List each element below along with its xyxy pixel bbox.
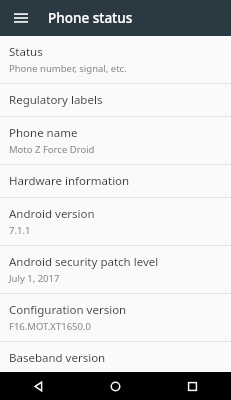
staticText: Status xyxy=(9,44,43,60)
button[interactable]: Recent apps xyxy=(154,372,231,400)
staticText: Configuration version xyxy=(9,302,127,318)
staticText: Regulatory labels xyxy=(9,92,103,108)
staticText: Android version xyxy=(9,206,95,222)
staticText: Moto Z Force Droid xyxy=(9,143,95,156)
button[interactable]: Configuration version xyxy=(0,294,231,341)
staticText: F16.MOT.XT1650.0 xyxy=(9,320,91,333)
staticText: Android security patch level xyxy=(9,254,159,270)
button[interactable]: Hardware information xyxy=(0,165,231,197)
staticText: Phone name xyxy=(9,125,78,141)
button[interactable]: Phone name xyxy=(0,117,231,164)
button[interactable]: Status xyxy=(0,36,231,83)
staticText: Phone number, signal, etc. xyxy=(9,62,127,75)
button[interactable]: Open navigation menu xyxy=(8,5,34,31)
staticText: Hardware information xyxy=(9,173,130,189)
button[interactable]: Regulatory labels xyxy=(0,84,231,116)
staticText: 7.1.1 xyxy=(9,224,31,237)
staticText: Baseband version xyxy=(9,350,106,364)
button[interactable]: Back xyxy=(0,372,77,400)
staticText: Phone status xyxy=(48,9,133,27)
button[interactable]: Baseband version xyxy=(0,342,231,372)
button[interactable]: Android version xyxy=(0,198,231,245)
button[interactable]: Home xyxy=(77,372,154,400)
staticText: July 1, 2017 xyxy=(9,272,60,285)
button[interactable]: Android security patch level xyxy=(0,246,231,293)
